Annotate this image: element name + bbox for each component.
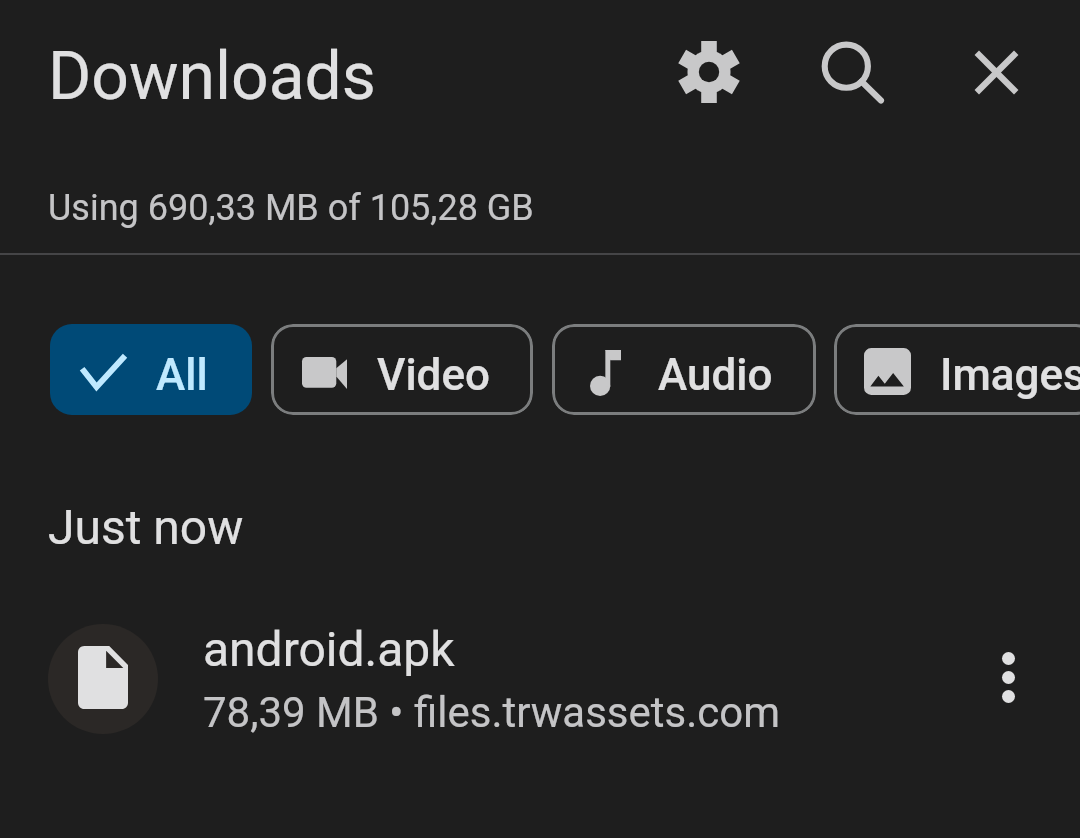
staticText: Using 690,33 MB of 105,28 GB [48,187,534,229]
staticText: Audio [658,349,773,401]
staticText: All [156,349,208,401]
staticText: Just now [48,499,244,555]
button[interactable]: Settings [661,24,757,120]
button[interactable]: Close [948,24,1044,120]
button[interactable]: Images [834,324,1080,415]
button[interactable]: android.apk [0,608,1080,750]
staticText: Video [377,349,490,401]
button[interactable]: Audio [552,324,816,415]
button[interactable]: Search [806,26,902,122]
staticText: android.apk [203,621,455,677]
staticText: Images [940,349,1080,401]
staticText: Downloads [48,38,376,115]
button[interactable]: All [50,324,252,415]
button[interactable]: Video [271,324,533,415]
staticText: 78,39 MB • files.trwassets.com [203,688,781,737]
button[interactable]: More options [960,631,1056,727]
